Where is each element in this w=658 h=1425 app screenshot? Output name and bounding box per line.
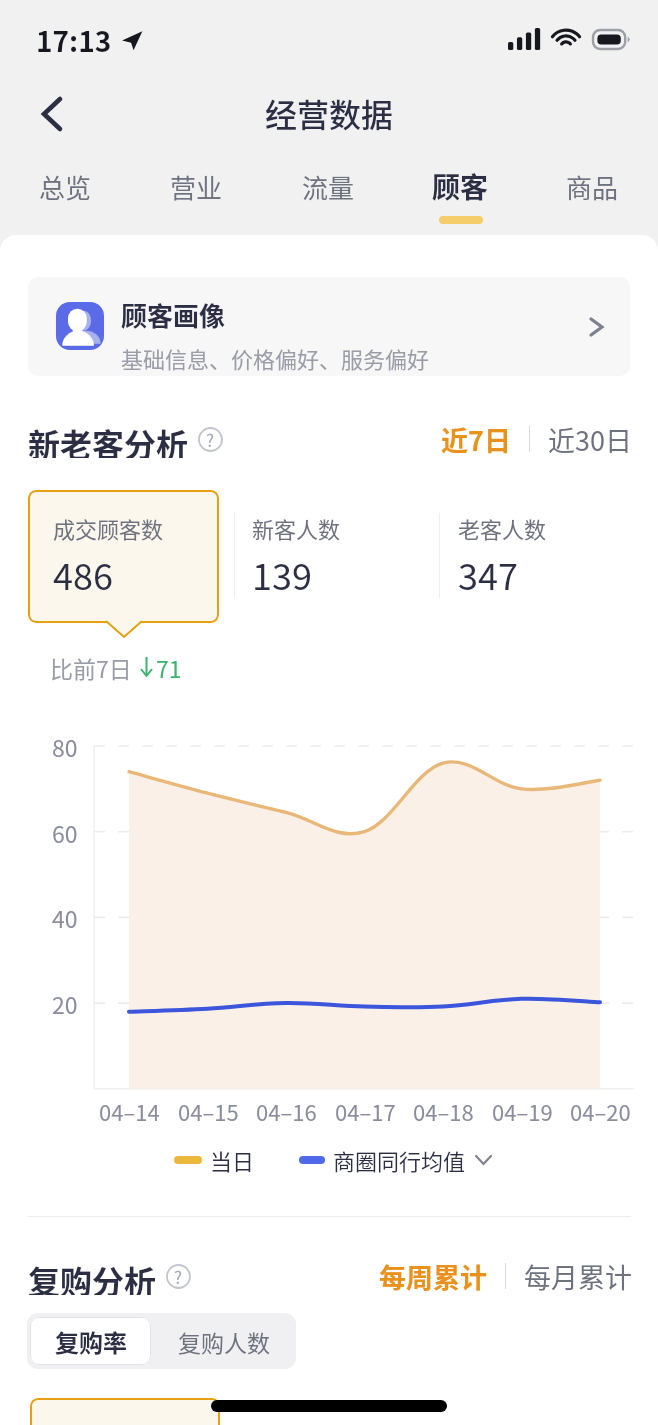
staticText: 商品 [566,168,619,206]
staticText: 新客人数 [252,512,341,544]
button[interactable]: 商品 [526,158,658,235]
staticText: 老客人数 [458,512,547,544]
staticText: 顾客画像 [121,296,226,334]
button[interactable]: 新客人数 [252,512,412,612]
button[interactable]: Open customer profile [564,296,618,350]
button[interactable]: Help [165,1263,191,1289]
staticText: 复购人数 [178,1325,270,1358]
staticText: 60 [52,816,78,849]
staticText: 04–18 [413,1095,474,1127]
staticText: 04–17 [335,1095,396,1127]
staticText: 04–15 [178,1095,239,1127]
staticText: 139 [252,548,312,600]
staticText: ? [206,427,215,452]
staticText: 486 [53,548,113,600]
staticText: ? [174,1264,183,1289]
button[interactable]: Help [197,426,223,452]
staticText: 04–20 [570,1095,631,1127]
staticText: 当日 [210,1144,255,1176]
button[interactable]: 每周累计 [379,1257,487,1295]
button[interactable]: 复购率 [30,1317,151,1365]
staticText: 04–16 [256,1095,317,1127]
button[interactable]: 营业 [131,158,262,235]
button[interactable]: 总览 [0,158,131,235]
staticText: 04–19 [492,1095,553,1127]
button[interactable]: 每月累计 [524,1257,632,1295]
staticText: 新老客分析 [28,420,189,458]
staticText: 04–14 [99,1095,160,1127]
staticText: 营业 [170,168,223,206]
button[interactable]: 近30日 [548,420,632,458]
staticText: 复购率 [55,1324,127,1359]
button[interactable]: 成交顾客数 [28,490,219,623]
staticText: 成交顾客数 [53,512,164,544]
staticText: 每月累计 [524,1257,632,1295]
staticText: 基础信息、价格偏好、服务偏好 [121,342,430,374]
button[interactable]: 流量 [262,158,394,235]
button[interactable]: Back [26,88,78,140]
button[interactable]: 近7日 [441,420,511,458]
staticText: 经营数据 [265,90,394,136]
staticText: 近30日 [548,420,632,458]
button[interactable]: 商圈同行均值 [333,1144,492,1176]
staticText: 复购分析 [28,1257,157,1295]
staticText: 比前7日 [50,651,132,681]
staticText: 总览 [39,168,92,206]
staticText: 40 [52,901,78,934]
staticText: 顾客 [432,166,489,207]
button[interactable]: 顾客 [394,158,526,235]
staticText: 71 [156,651,182,681]
button[interactable]: 复购人数 [151,1313,296,1369]
staticText: 347 [458,548,518,600]
staticText: 80 [52,730,78,763]
staticText: 流量 [302,168,355,206]
button[interactable]: 顾客画像 [28,277,630,376]
staticText: 每周累计 [379,1257,487,1295]
staticText: 商圈同行均值 [333,1144,466,1176]
staticText: 近7日 [441,420,511,458]
button[interactable]: 老客人数 [458,512,618,612]
staticText: 20 [52,987,78,1020]
staticText: 17:13 [36,20,112,61]
